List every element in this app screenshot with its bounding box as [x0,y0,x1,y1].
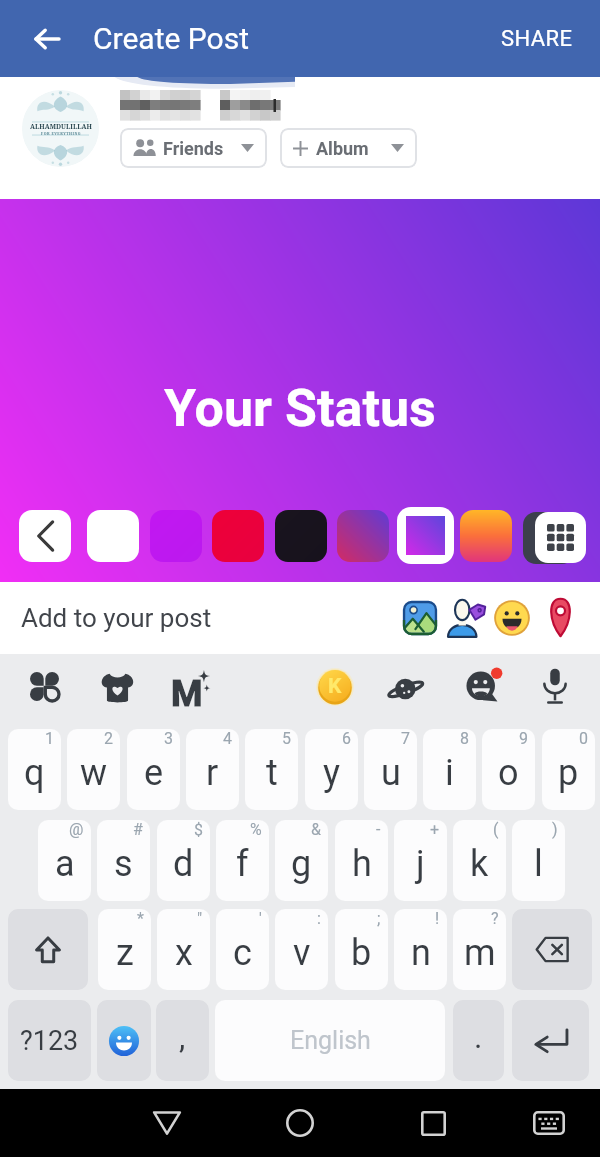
staticText: 0 [579,729,588,748]
staticText: English [290,1026,371,1055]
staticText: - [376,820,381,839]
button[interactable]: Magic [173,670,209,706]
button[interactable]: u [364,729,417,810]
button[interactable]: q [8,729,61,810]
button[interactable]: Discover [388,672,424,708]
staticText: q [24,752,45,794]
button[interactable]: j [394,820,447,901]
staticText: ! [435,909,440,928]
button[interactable]: More colours [535,512,586,563]
button[interactable]: Orange [460,510,512,562]
button[interactable]: Back [143,1089,191,1157]
button[interactable]: l [512,820,565,901]
button[interactable]: Themes [101,672,134,703]
staticText: 6 [342,729,351,748]
button[interactable]: Recent apps [409,1089,457,1157]
staticText: 3 [164,729,173,748]
button[interactable]: d [157,820,210,901]
button[interactable]: Gradient [337,510,389,562]
button[interactable]: n [394,909,447,990]
button[interactable]: s [97,820,150,901]
staticText: w [80,752,108,794]
button[interactable]: e [127,729,180,810]
staticText: d [173,843,194,885]
button[interactable]: Check in [545,598,576,637]
staticText: j [416,843,425,885]
button[interactable]: Friends [120,128,267,168]
button[interactable]: m [453,909,506,990]
button[interactable]: Stickers [30,672,59,701]
button[interactable]: Enter [512,1000,589,1081]
button[interactable]: i [423,729,476,810]
button[interactable]: Symbols [8,1000,91,1081]
button[interactable]: v [275,909,328,990]
button[interactable]: a [38,820,91,901]
button[interactable]: Black [275,510,327,562]
button[interactable]: y [305,729,358,810]
staticText: ; [377,909,381,928]
button[interactable]: Tag people [448,599,487,638]
button[interactable]: h [335,820,388,901]
button[interactable]: Backspace [512,909,592,990]
staticText: x [175,932,193,974]
button[interactable]: Period [453,1000,504,1081]
staticText: , [179,1018,186,1056]
button[interactable]: Back [23,15,71,63]
staticText: & [311,820,321,839]
button[interactable]: z [98,909,151,990]
button[interactable]: White [87,510,139,562]
button[interactable]: b [335,909,388,990]
button[interactable]: Comma [156,1000,209,1081]
staticText: t [266,752,278,794]
button[interactable]: x [157,909,210,990]
staticText: b [351,932,372,974]
button[interactable]: Space [215,1000,445,1081]
staticText: z [116,932,134,974]
button[interactable]: p [542,729,595,810]
button[interactable]: Emoji [464,668,502,706]
staticText: . [474,1018,483,1056]
button[interactable]: Profile picture [22,90,99,167]
staticText: Album [316,138,369,159]
button[interactable]: Emoji [97,1000,151,1081]
button[interactable]: o [482,729,535,810]
button[interactable]: k [453,820,506,901]
button[interactable]: Album [280,128,417,168]
staticText: * [137,909,144,928]
button[interactable]: g [275,820,328,901]
button[interactable]: Red [212,510,264,562]
button[interactable]: Selected colour [397,507,454,564]
button[interactable]: Home [276,1089,324,1157]
staticText: : [317,909,321,928]
button[interactable]: SHARE [474,0,600,77]
button[interactable]: c [216,909,269,990]
button[interactable]: f [216,820,269,901]
button[interactable]: Feeling or activity [493,599,531,637]
staticText: l [534,843,543,885]
button[interactable]: Rewards [316,668,354,706]
staticText: s [114,843,133,885]
button[interactable]: Voice input [541,668,569,704]
staticText: # [133,820,143,839]
staticText: ? [491,909,499,928]
staticText: % [250,820,262,839]
staticText: Your Status [164,378,436,439]
button[interactable]: Previous colours [19,510,71,562]
button[interactable]: Shift [8,909,88,990]
staticText: e [144,752,164,794]
button[interactable]: t [245,729,298,810]
staticText: y [323,752,341,794]
staticText: FOR EVERYTHING [41,131,81,136]
staticText: Create Post [93,21,249,56]
button[interactable]: Photo [401,599,439,637]
button[interactable]: Switch keyboard [525,1089,573,1157]
staticText: @ [69,820,84,839]
button[interactable]: w [67,729,120,810]
staticText: Add to your post [21,603,212,633]
button[interactable]: r [186,729,239,810]
staticText: $ [194,820,203,839]
staticText: 8 [460,729,469,748]
staticText: ALHAMDULILLAH [30,122,92,131]
button[interactable]: Purple [150,510,202,562]
staticText: a [55,843,75,885]
